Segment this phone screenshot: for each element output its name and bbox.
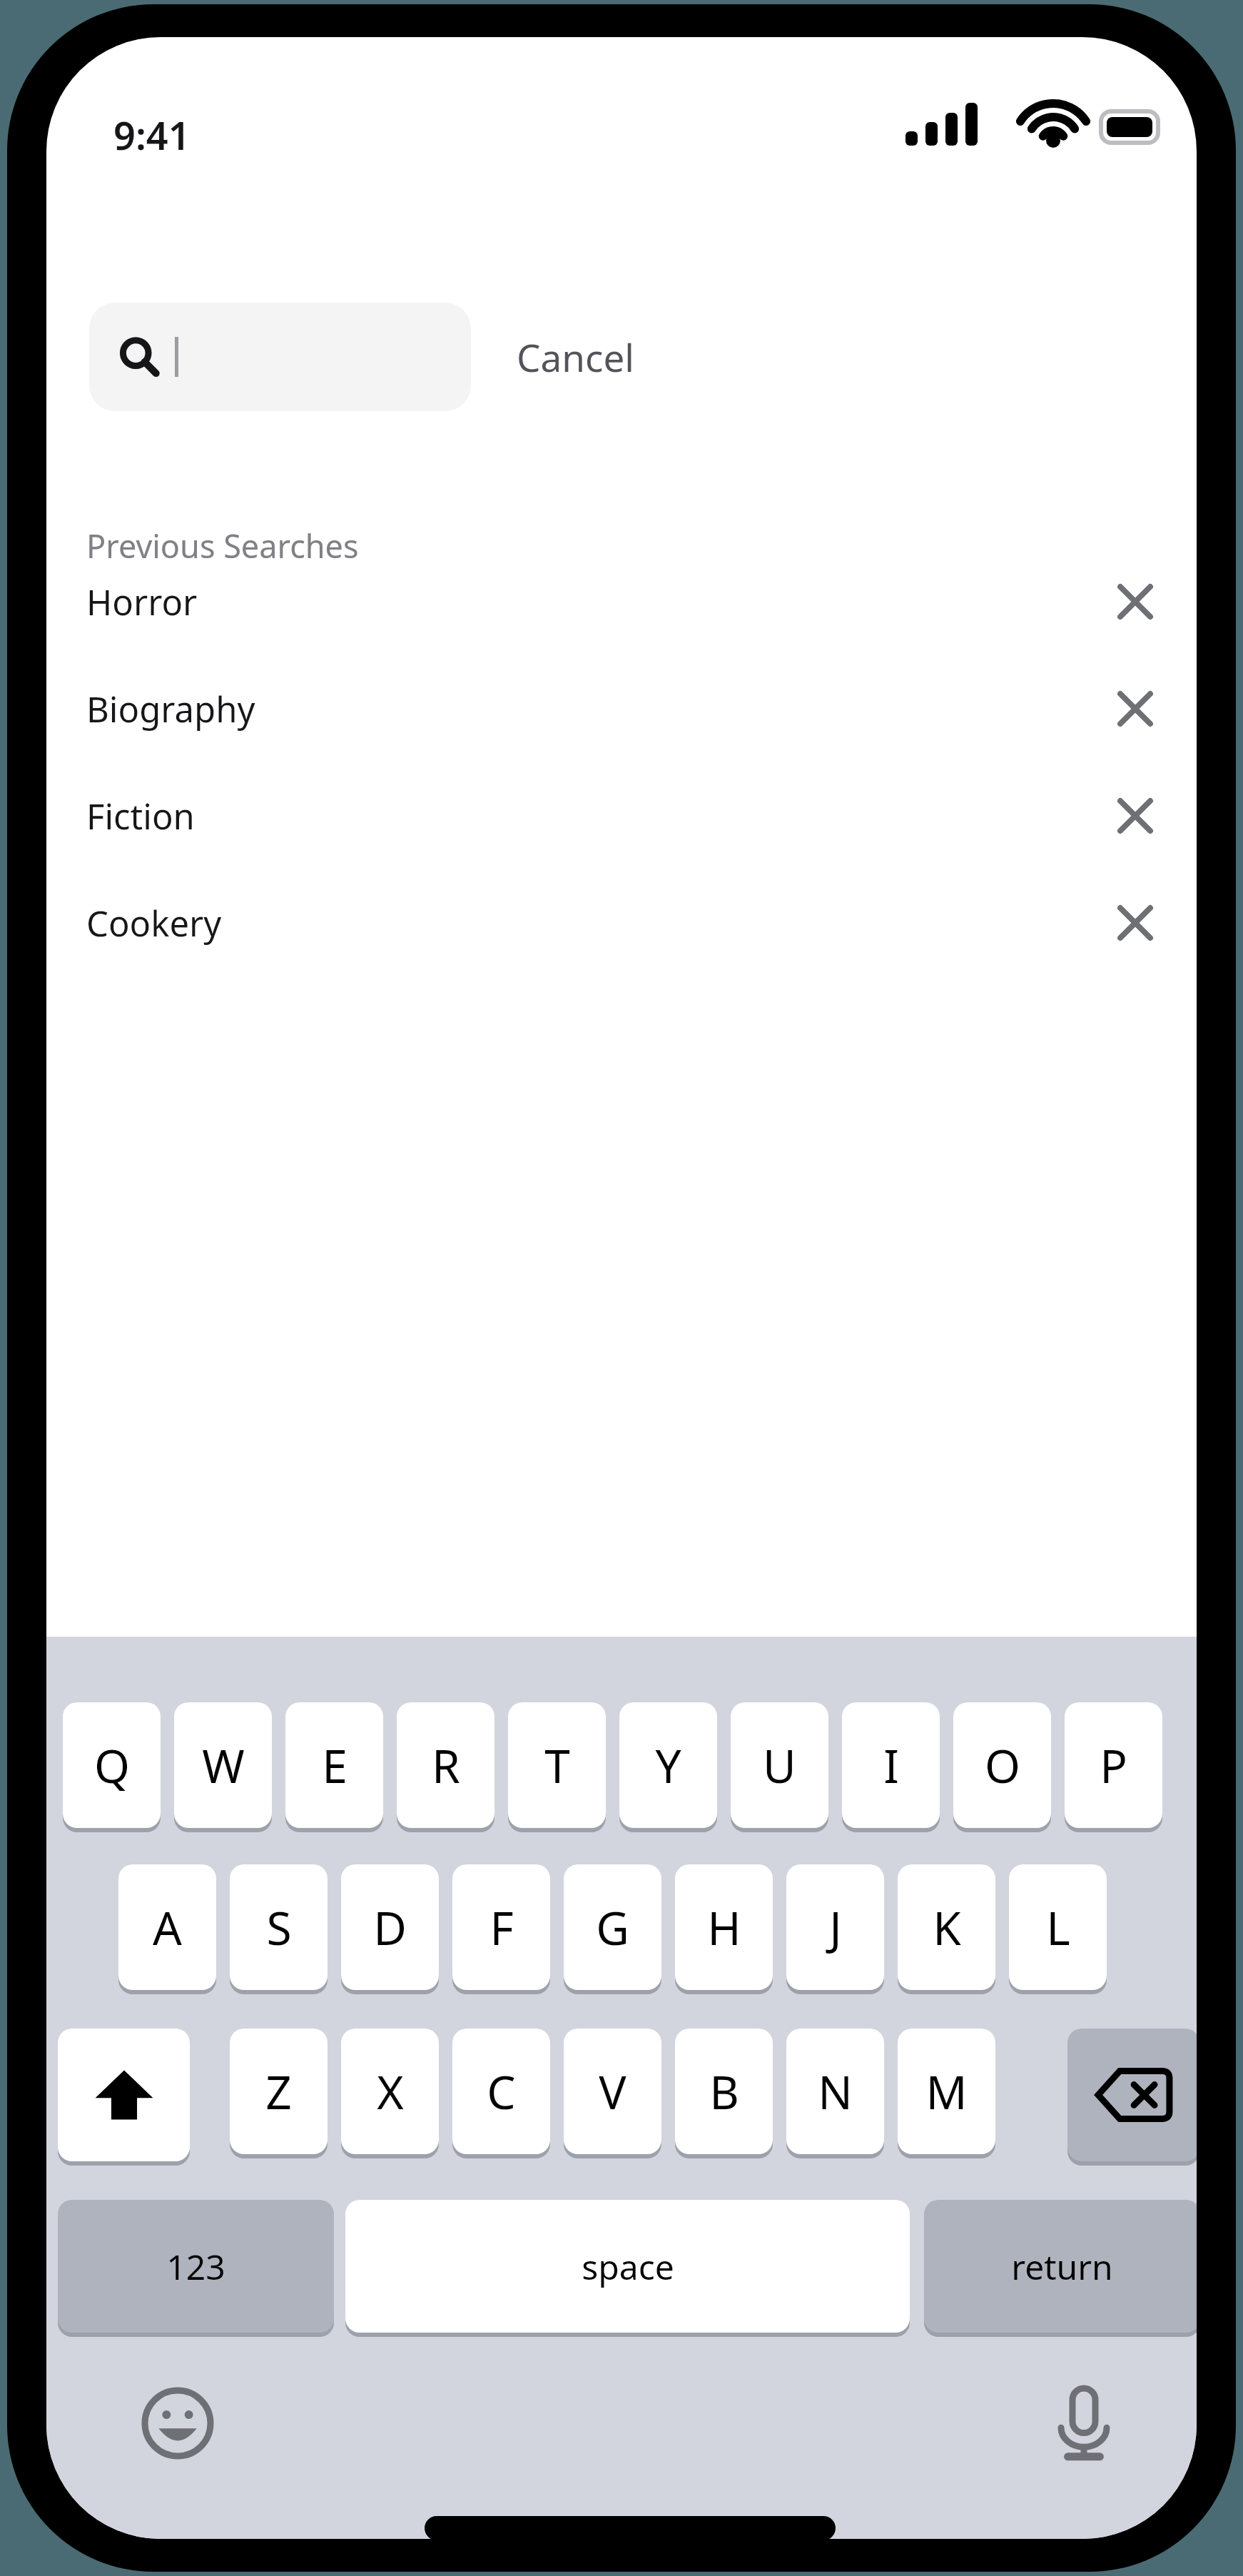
staticText: B: [709, 2061, 739, 2123]
button[interactable]: Remove Biography: [1095, 669, 1175, 749]
button[interactable]: T: [508, 1702, 606, 1828]
button[interactable]: space: [345, 2200, 910, 2333]
button[interactable]: I: [842, 1702, 940, 1828]
button[interactable]: Cookery: [46, 869, 1197, 976]
staticText: P: [1100, 1734, 1127, 1797]
button[interactable]: K: [898, 1864, 995, 1990]
button[interactable]: Shift: [58, 2029, 190, 2161]
button[interactable]: V: [564, 2029, 661, 2154]
staticText: Previous Searches: [86, 524, 359, 567]
button[interactable]: H: [675, 1864, 773, 1990]
staticText: J: [829, 1896, 842, 1959]
staticText: X: [377, 2061, 404, 2123]
staticText: H: [707, 1896, 741, 1959]
button[interactable]: Remove Fiction: [1095, 776, 1175, 856]
staticText: M: [925, 2061, 968, 2123]
button[interactable]: R: [397, 1702, 494, 1828]
staticText: W: [202, 1734, 245, 1797]
staticText: E: [322, 1734, 347, 1797]
button[interactable]: Z: [230, 2029, 328, 2154]
button[interactable]: Horror: [46, 548, 1197, 655]
staticText: Horror: [86, 578, 198, 626]
staticText: space: [582, 2243, 674, 2290]
button[interactable]: G: [564, 1864, 661, 1990]
button[interactable]: F: [452, 1864, 550, 1990]
staticText: O: [985, 1734, 1020, 1797]
button[interactable]: S: [230, 1864, 328, 1990]
button[interactable]: D: [341, 1864, 439, 1990]
button[interactable]: Backspace: [1067, 2029, 1197, 2161]
button[interactable]: Cancel: [512, 323, 639, 391]
button[interactable]: 123: [58, 2200, 334, 2333]
button[interactable]: C: [452, 2029, 550, 2154]
staticText: 123: [166, 2243, 225, 2290]
staticText: V: [599, 2061, 626, 2123]
staticText: 9:41: [113, 108, 191, 161]
staticText: L: [1046, 1896, 1070, 1959]
staticText: Cancel: [517, 331, 634, 383]
button[interactable]: Biography: [46, 655, 1197, 762]
staticText: return: [1011, 2243, 1113, 2290]
button[interactable]: return: [924, 2200, 1197, 2333]
button[interactable]: E: [285, 1702, 383, 1828]
button[interactable]: O: [953, 1702, 1051, 1828]
button[interactable]: Fiction: [46, 762, 1197, 869]
button[interactable]: Emoji keyboard: [131, 2376, 225, 2470]
staticText: C: [487, 2061, 516, 2123]
staticText: Z: [265, 2061, 292, 2123]
button[interactable]: U: [731, 1702, 828, 1828]
staticText: U: [763, 1734, 796, 1797]
button[interactable]: W: [174, 1702, 272, 1828]
button[interactable]: M: [898, 2029, 995, 2154]
button[interactable]: Remove Horror: [1095, 562, 1175, 642]
staticText: S: [266, 1896, 292, 1959]
staticText: D: [373, 1896, 407, 1959]
button[interactable]: J: [786, 1864, 884, 1990]
button[interactable]: Remove Cookery: [1095, 883, 1175, 963]
staticText: F: [489, 1896, 514, 1959]
staticText: Y: [655, 1734, 681, 1797]
button[interactable]: Q: [63, 1702, 161, 1828]
staticText: Fiction: [86, 792, 195, 840]
staticText: Cookery: [86, 899, 222, 947]
button[interactable]: A: [118, 1864, 216, 1990]
button[interactable]: Dictation: [1037, 2376, 1131, 2470]
button[interactable]: X: [341, 2029, 439, 2154]
staticText: Q: [94, 1734, 130, 1797]
button[interactable]: [89, 303, 471, 411]
staticText: I: [883, 1734, 899, 1797]
button[interactable]: P: [1065, 1702, 1162, 1828]
staticText: K: [933, 1896, 961, 1959]
button[interactable]: N: [786, 2029, 884, 2154]
button[interactable]: B: [675, 2029, 773, 2154]
button[interactable]: Y: [619, 1702, 717, 1828]
staticText: N: [818, 2061, 853, 2123]
staticText: T: [544, 1734, 570, 1797]
staticText: A: [153, 1896, 182, 1959]
staticText: R: [432, 1734, 460, 1797]
button[interactable]: L: [1009, 1864, 1107, 1990]
staticText: Biography: [86, 685, 255, 733]
staticText: G: [596, 1896, 629, 1959]
